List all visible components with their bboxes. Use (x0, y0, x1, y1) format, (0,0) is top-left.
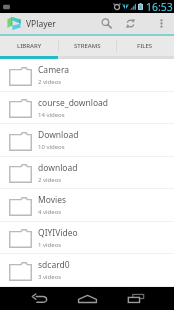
button[interactable]: QIYIVideo (0, 222, 174, 254)
staticText: 10 videos (38, 143, 65, 151)
button[interactable]: course_download (0, 92, 174, 124)
button[interactable]: Refresh (120, 13, 140, 34)
staticText: Camera (38, 64, 69, 76)
staticText: QIYIVideo (38, 227, 78, 239)
button[interactable]: Download (0, 124, 174, 157)
staticText: Download (38, 129, 79, 141)
button[interactable]: sdcard0 (0, 254, 174, 287)
staticText: LIBRARY (17, 42, 42, 50)
staticText: 2 videos (38, 176, 62, 184)
button[interactable]: Home (75, 287, 100, 310)
staticText: FILES (137, 42, 153, 50)
button[interactable]: Search (96, 13, 116, 34)
staticText: sdcard0 (38, 259, 70, 271)
staticText: 16:53 (146, 0, 173, 13)
staticText: download (38, 162, 78, 174)
button[interactable]: download (0, 157, 174, 189)
staticText: 4 videos (38, 208, 62, 216)
button[interactable]: LIBRARY (0, 36, 58, 56)
button[interactable]: Movies (0, 189, 174, 222)
staticText: 3 videos (38, 273, 62, 281)
staticText: STREAMS (74, 42, 101, 50)
button[interactable]: Recent apps (123, 287, 148, 310)
staticText: Movies (38, 194, 67, 206)
staticText: 14 videos (38, 111, 65, 119)
staticText: VPlayer (26, 18, 56, 30)
staticText: 1 videos (38, 241, 62, 249)
button[interactable]: FILES (116, 36, 174, 56)
button[interactable]: Camera (0, 59, 174, 92)
button[interactable]: More options (152, 13, 170, 34)
button[interactable]: STREAMS (58, 36, 116, 56)
button[interactable]: Back (27, 287, 52, 310)
staticText: 2 videos (38, 78, 62, 86)
staticText: course_download (38, 97, 109, 109)
